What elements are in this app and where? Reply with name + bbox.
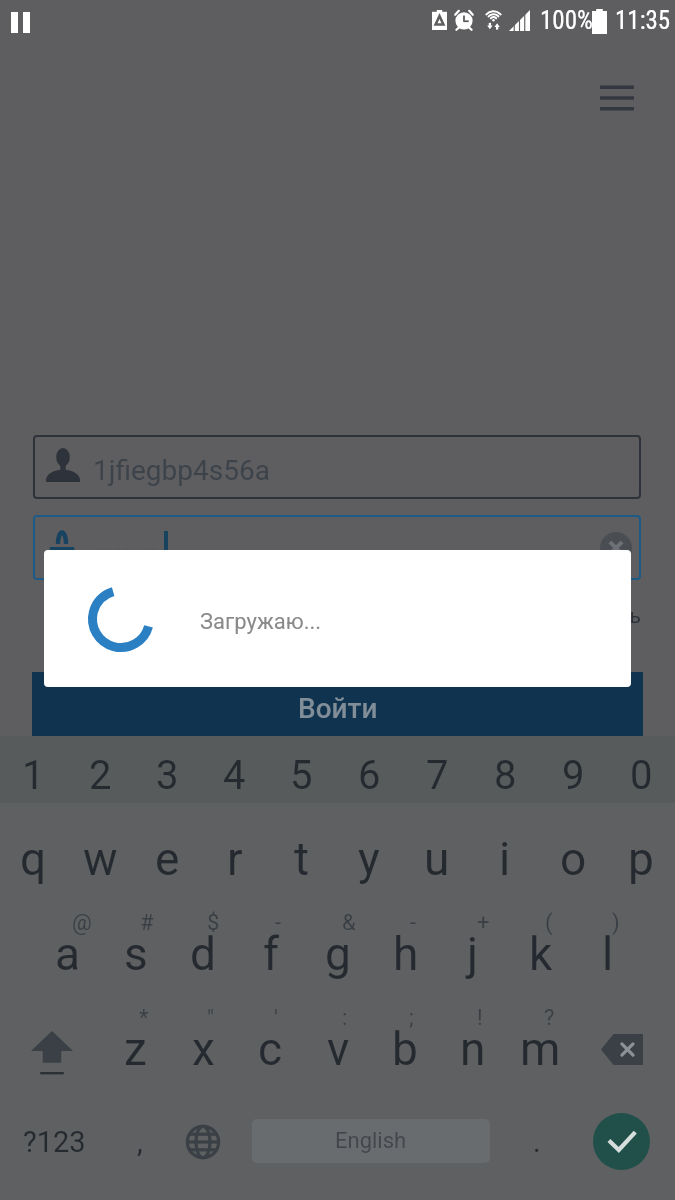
button[interactable]: English xyxy=(252,1119,490,1163)
button[interactable]: 1 xyxy=(0,736,67,803)
button[interactable]: k xyxy=(507,906,575,1002)
staticText: z xyxy=(124,1022,147,1076)
staticText: j xyxy=(467,927,479,981)
staticText: x xyxy=(192,1022,215,1076)
button[interactable]: 0 xyxy=(607,736,675,803)
button[interactable]: i xyxy=(471,811,539,907)
button[interactable]: 8 xyxy=(471,736,539,803)
button[interactable]: s xyxy=(102,906,170,1002)
button[interactable]: 6 xyxy=(335,736,403,803)
button[interactable]: m xyxy=(506,1001,574,1097)
staticText: f xyxy=(263,927,279,981)
staticText: v xyxy=(327,1022,350,1076)
staticText: 3 xyxy=(156,752,179,799)
staticText: r xyxy=(227,832,243,886)
staticText: q xyxy=(20,832,47,886)
staticText: & xyxy=(342,910,356,936)
button[interactable]: t xyxy=(268,811,335,907)
button[interactable]: f xyxy=(237,906,305,1002)
button[interactable]: Enter xyxy=(593,1113,650,1170)
button[interactable]: Забыли пароль xyxy=(380,600,641,632)
button[interactable]: 9 xyxy=(539,736,607,803)
staticText: 5 xyxy=(290,752,313,799)
staticText: ( xyxy=(545,910,553,936)
staticText: # xyxy=(140,910,154,936)
staticText: ) xyxy=(612,910,620,936)
button[interactable]: Clear text xyxy=(33,515,641,580)
staticText: ; xyxy=(409,1005,414,1031)
button[interactable]: 1jfiegbp4s56a xyxy=(33,435,641,499)
button[interactable]: x xyxy=(169,1001,237,1097)
staticText: . xyxy=(533,1125,541,1159)
button[interactable]: 2 xyxy=(67,736,134,803)
staticText: @ xyxy=(72,910,92,936)
staticText: p xyxy=(628,832,654,886)
staticText: Загружаю... xyxy=(200,609,322,635)
staticText: ?123 xyxy=(23,1125,86,1159)
button[interactable]: c xyxy=(236,1001,304,1097)
staticText: d xyxy=(190,927,216,981)
staticText: g xyxy=(325,927,351,981)
button[interactable]: y xyxy=(335,811,403,907)
staticText: + xyxy=(477,910,490,936)
button[interactable]: u xyxy=(403,811,471,907)
button[interactable]: l xyxy=(574,906,642,1002)
button[interactable]: a xyxy=(34,906,102,1002)
staticText: English xyxy=(335,1128,407,1154)
staticText: e xyxy=(155,832,180,886)
button[interactable]: q xyxy=(0,811,67,907)
staticText: - xyxy=(410,910,417,936)
button[interactable]: Menu xyxy=(584,70,650,126)
button[interactable]: g xyxy=(304,906,372,1002)
button[interactable]: 7 xyxy=(403,736,471,803)
button[interactable]: Clear text xyxy=(598,530,634,566)
button[interactable]: o xyxy=(539,811,607,907)
staticText: n xyxy=(460,1022,486,1076)
staticText: k xyxy=(529,927,553,981)
button[interactable]: j xyxy=(439,906,507,1002)
staticText: Забыли пароль xyxy=(489,604,641,629)
button[interactable]: n xyxy=(439,1001,507,1097)
staticText: 8 xyxy=(494,752,517,799)
button[interactable]: Backspace xyxy=(580,1001,664,1097)
button[interactable]: r xyxy=(201,811,268,907)
staticText: 11:35 xyxy=(615,6,671,35)
button[interactable]: d xyxy=(169,906,237,1002)
staticText: * xyxy=(139,1005,149,1031)
button[interactable]: p xyxy=(607,811,675,907)
staticText: 0 xyxy=(630,752,653,799)
button[interactable]: Shift xyxy=(10,1001,94,1097)
button[interactable]: b xyxy=(371,1001,439,1097)
staticText: 1 xyxy=(22,752,45,799)
staticText: ! xyxy=(477,1005,483,1031)
staticText: Войти xyxy=(298,692,378,725)
button[interactable]: v xyxy=(304,1001,372,1097)
button[interactable]: 4 xyxy=(201,736,268,803)
staticText: 9 xyxy=(562,752,585,799)
button[interactable]: z xyxy=(101,1001,169,1097)
staticText: 4 xyxy=(223,752,246,799)
staticText: u xyxy=(424,832,450,886)
staticText: 2 xyxy=(89,752,112,799)
staticText: a xyxy=(55,927,81,981)
staticText: ? xyxy=(544,1005,555,1031)
staticText: : xyxy=(342,1005,348,1031)
staticText: w xyxy=(83,832,118,886)
button[interactable]: h xyxy=(372,906,440,1002)
button[interactable]: Change language xyxy=(174,1097,232,1187)
staticText: ' xyxy=(274,1005,278,1031)
staticText: 6 xyxy=(358,752,381,799)
staticText: s xyxy=(124,927,148,981)
staticText: t xyxy=(294,832,310,886)
button[interactable]: e xyxy=(134,811,201,907)
button[interactable]: w xyxy=(67,811,134,907)
button[interactable]: ?123 xyxy=(8,1097,100,1187)
button[interactable]: 5 xyxy=(268,736,335,803)
staticText: " xyxy=(207,1005,215,1031)
button[interactable]: 1 xyxy=(0,736,675,803)
button[interactable]: 3 xyxy=(134,736,201,803)
staticText: , xyxy=(137,1125,143,1159)
button[interactable]: Войти xyxy=(32,672,643,736)
